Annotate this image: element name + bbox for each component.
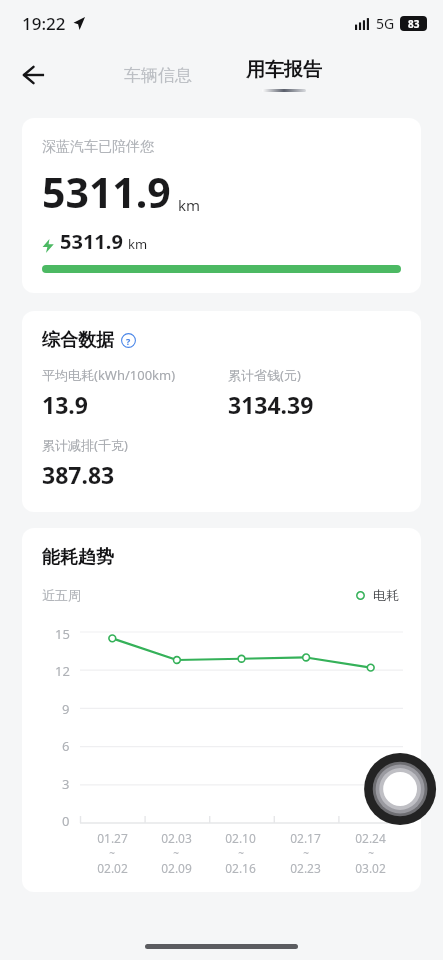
button[interactable]: 01.27: [80, 830, 144, 876]
staticText: 02.17: [290, 830, 321, 846]
staticText: 02.02: [97, 860, 128, 876]
button[interactable]: Back: [10, 51, 58, 99]
button[interactable]: Tire status: [365, 753, 443, 825]
staticText: 12: [55, 662, 70, 680]
staticText: 387.83: [42, 459, 115, 490]
staticText: 0: [62, 812, 70, 830]
staticText: 近五周: [42, 587, 81, 603]
staticText: 3134.39: [228, 389, 314, 420]
staticText: 6: [62, 737, 70, 755]
button[interactable]: 用车报告: [236, 54, 332, 96]
staticText: 累计省钱(元): [228, 366, 301, 384]
staticText: km: [128, 235, 148, 253]
button[interactable]: 02.10: [208, 830, 273, 876]
staticText: 02.23: [290, 860, 321, 876]
button[interactable]: 02.17: [273, 830, 338, 876]
staticText: 3: [62, 775, 70, 793]
staticText: ?: [126, 335, 131, 347]
staticText: 03.02: [355, 860, 386, 876]
staticText: 9: [62, 700, 70, 718]
button[interactable]: 02.03: [144, 830, 208, 876]
staticText: 累计减排(千克): [42, 436, 128, 454]
staticText: 综合数据: [42, 329, 114, 352]
staticText: 02.03: [161, 830, 192, 846]
button[interactable]: 电耗: [352, 583, 403, 607]
staticText: 02.09: [161, 860, 192, 876]
staticText: ~: [303, 846, 309, 860]
staticText: km: [178, 195, 201, 215]
staticText: 02.10: [225, 830, 256, 846]
staticText: 车辆信息: [124, 65, 192, 86]
button[interactable]: 02.24: [338, 830, 403, 876]
staticText: 15: [55, 625, 70, 643]
staticText: 5311.9: [60, 228, 123, 255]
staticText: 5G: [376, 14, 395, 33]
button[interactable]: 车辆信息: [112, 59, 204, 92]
staticText: 83: [408, 17, 420, 31]
staticText: 5311.9: [42, 164, 171, 220]
staticText: 电耗: [373, 587, 399, 603]
staticText: 深蓝汽车已陪伴您: [42, 138, 154, 156]
staticText: ~: [238, 846, 244, 860]
button[interactable]: Info: [121, 333, 136, 348]
staticText: 01.27: [97, 830, 128, 846]
staticText: ~: [109, 846, 115, 860]
button[interactable]: 综合数据: [22, 311, 421, 512]
staticText: 02.24: [355, 830, 386, 846]
staticText: 19:22: [22, 12, 66, 35]
staticText: 02.16: [225, 860, 256, 876]
button[interactable]: 深蓝汽车已陪伴您: [22, 118, 421, 293]
staticText: ~: [173, 846, 179, 860]
staticText: 能耗趋势: [42, 546, 114, 569]
staticText: 用车报告: [246, 58, 322, 82]
staticText: 平均电耗(kWh/100km): [42, 366, 176, 384]
staticText: ~: [368, 846, 374, 860]
staticText: 13.9: [42, 389, 88, 420]
